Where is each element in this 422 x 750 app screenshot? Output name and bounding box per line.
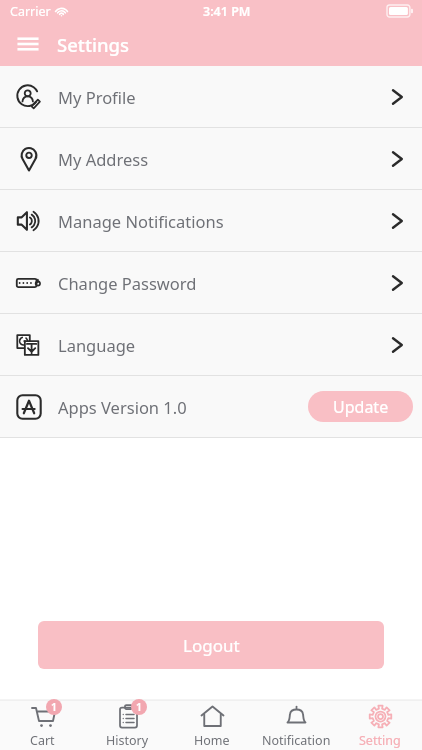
staticText: Home	[194, 732, 230, 749]
button[interactable]: Update	[308, 391, 413, 422]
button[interactable]: 1	[0, 700, 85, 750]
staticText: Update	[333, 396, 389, 418]
button[interactable]: Language	[0, 314, 422, 375]
button[interactable]: Manage Notifications	[0, 190, 422, 251]
staticText: My Profile	[58, 86, 136, 108]
button[interactable]: Change Password	[0, 252, 422, 313]
staticText: Logout	[183, 634, 240, 657]
staticText: 1	[51, 700, 58, 714]
staticText: Language	[58, 334, 136, 356]
button[interactable]: Notification	[254, 700, 338, 750]
staticText: 1	[136, 700, 143, 714]
staticText: Change Password	[58, 272, 197, 294]
staticText: Notification	[262, 732, 331, 749]
button[interactable]: My Address	[0, 128, 422, 189]
button[interactable]: Setting	[338, 700, 422, 750]
staticText: Manage Notifications	[58, 210, 224, 232]
staticText: Carrier	[10, 3, 51, 20]
button[interactable]: My Profile	[0, 66, 422, 127]
button[interactable]: Open navigation menu	[8, 24, 48, 64]
staticText: 3:41 PM	[203, 3, 251, 20]
staticText: Setting	[359, 732, 401, 749]
staticText: My Address	[58, 148, 149, 170]
button[interactable]: 1	[85, 700, 170, 750]
staticText: History	[106, 732, 149, 749]
button[interactable]: Logout	[38, 621, 384, 669]
staticText: Cart	[30, 732, 55, 749]
staticText: Settings	[57, 32, 130, 57]
staticText: Apps Version 1.0	[58, 396, 187, 418]
button[interactable]: Home	[170, 700, 254, 750]
